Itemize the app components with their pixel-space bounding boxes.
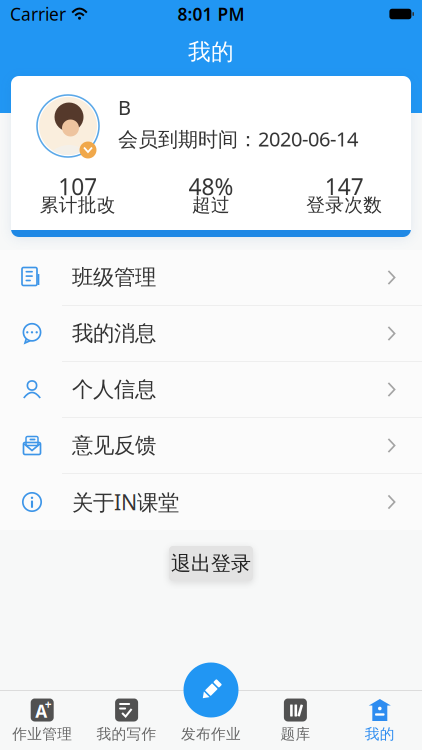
staticText: 累计批改 (40, 194, 116, 216)
staticText: 会员到期时间：2020-06-14 (118, 126, 358, 152)
button[interactable]: 关于IN课堂 (0, 474, 422, 530)
button[interactable]: A (0, 698, 84, 743)
button[interactable]: 我的 (338, 698, 422, 743)
staticText: 我的消息 (72, 320, 156, 347)
staticText: 个人信息 (72, 376, 156, 403)
staticText: 超过 (192, 194, 230, 216)
button[interactable]: 发布作业 (169, 698, 253, 743)
staticText: 我的 (188, 38, 234, 66)
staticText: 题库 (280, 725, 310, 743)
staticText: B (118, 94, 131, 121)
staticText: A (35, 699, 47, 722)
staticText: 作业管理 (12, 725, 72, 743)
button[interactable]: 个人信息 (0, 362, 422, 418)
staticText: 班级管理 (72, 264, 156, 291)
button[interactable]: 意见反馈 (0, 418, 422, 474)
button[interactable]: 我的消息 (0, 306, 422, 362)
staticText: 107 (58, 171, 97, 202)
staticText: 发布作业 (181, 725, 241, 743)
button[interactable]: 发布作业 (183, 662, 238, 717)
staticText: 关于IN课堂 (72, 488, 179, 516)
staticText: Carrier (10, 2, 66, 25)
staticText: 登录次数 (306, 194, 382, 216)
staticText: + (45, 696, 52, 712)
staticText: 147 (325, 171, 364, 202)
staticText: 我的写作 (97, 725, 157, 743)
staticText: 8:01 PM (177, 2, 244, 25)
button[interactable]: 退出登录 (169, 546, 253, 581)
staticText: 退出登录 (171, 551, 251, 576)
staticText: 48% (188, 171, 233, 202)
staticText: 意见反馈 (72, 432, 156, 459)
button[interactable]: 题库 (253, 698, 338, 743)
staticText: 我的 (365, 725, 395, 743)
button[interactable]: 班级管理 (0, 250, 422, 306)
button[interactable]: 我的写作 (84, 698, 169, 743)
